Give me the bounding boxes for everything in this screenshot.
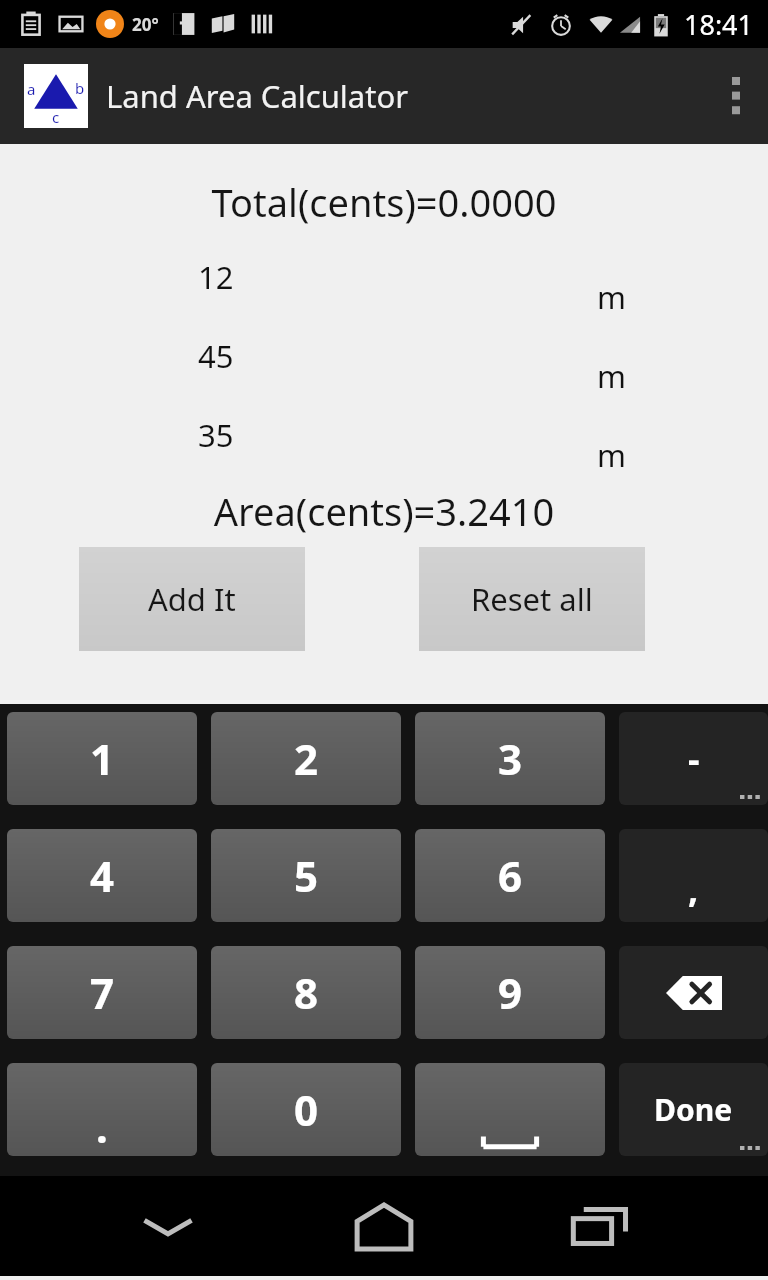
button[interactable]: Backspace — [619, 946, 768, 1039]
staticText: 18:41 — [684, 6, 754, 43]
button[interactable]: 3 — [415, 712, 605, 805]
staticText: b — [75, 78, 85, 98]
button[interactable]: Done — [619, 1063, 768, 1156]
button[interactable]: 6 — [415, 829, 605, 922]
button[interactable]: Hide keyboard — [120, 1178, 216, 1274]
staticText: 20° — [132, 13, 159, 36]
staticText: 7 — [90, 964, 115, 1021]
button[interactable]: 7 — [7, 946, 197, 1039]
button[interactable]: 5 — [211, 829, 401, 922]
staticText: , — [688, 864, 699, 913]
staticText: Reset all — [471, 578, 593, 620]
staticText: m — [597, 355, 626, 397]
button[interactable]: Recent apps — [552, 1178, 648, 1274]
button[interactable]: Reset all — [419, 547, 645, 651]
staticText: a — [27, 79, 36, 99]
staticText: Add It — [148, 578, 236, 620]
button[interactable]: Home — [336, 1178, 432, 1274]
staticText: 0 — [294, 1081, 319, 1138]
staticText: 2 — [294, 730, 319, 787]
button[interactable]: 0 — [211, 1063, 401, 1156]
staticText: Area(cents)=3.2410 — [0, 485, 768, 537]
button[interactable]: Add It — [79, 547, 305, 651]
staticText: m — [597, 276, 626, 318]
staticText: 8 — [294, 964, 319, 1021]
button[interactable]: 1 — [7, 712, 197, 805]
staticText: 4 — [90, 847, 115, 904]
staticText: 35 — [198, 414, 234, 456]
staticText: 1 — [90, 730, 115, 787]
button[interactable]: More options — [704, 48, 768, 144]
staticText: 45 — [198, 335, 234, 377]
staticText: m — [597, 434, 626, 476]
button[interactable]: Space — [415, 1063, 605, 1156]
staticText: 9 — [498, 964, 523, 1021]
staticText: c — [52, 107, 60, 127]
button[interactable]: Minus — [619, 712, 768, 805]
button[interactable]: 4 — [7, 829, 197, 922]
button[interactable]: App icon — [24, 64, 88, 128]
button[interactable]: 35 — [0, 406, 768, 485]
button[interactable]: 45 — [0, 327, 768, 406]
button[interactable]: . — [7, 1063, 197, 1156]
staticText: - — [688, 734, 700, 783]
button[interactable]: Comma — [619, 829, 768, 922]
staticText: Total(cents)=0.0000 — [0, 176, 768, 228]
staticText: . — [96, 1098, 108, 1155]
button[interactable]: 2 — [211, 712, 401, 805]
staticText: 5 — [294, 847, 319, 904]
staticText: 12 — [198, 256, 234, 298]
staticText: 3 — [498, 730, 523, 787]
staticText: Land Area Calculator — [106, 75, 409, 117]
button[interactable]: 9 — [415, 946, 605, 1039]
staticText: 6 — [498, 847, 523, 904]
button[interactable]: 8 — [211, 946, 401, 1039]
staticText: Done — [654, 1089, 733, 1130]
button[interactable]: 12 — [0, 248, 768, 327]
